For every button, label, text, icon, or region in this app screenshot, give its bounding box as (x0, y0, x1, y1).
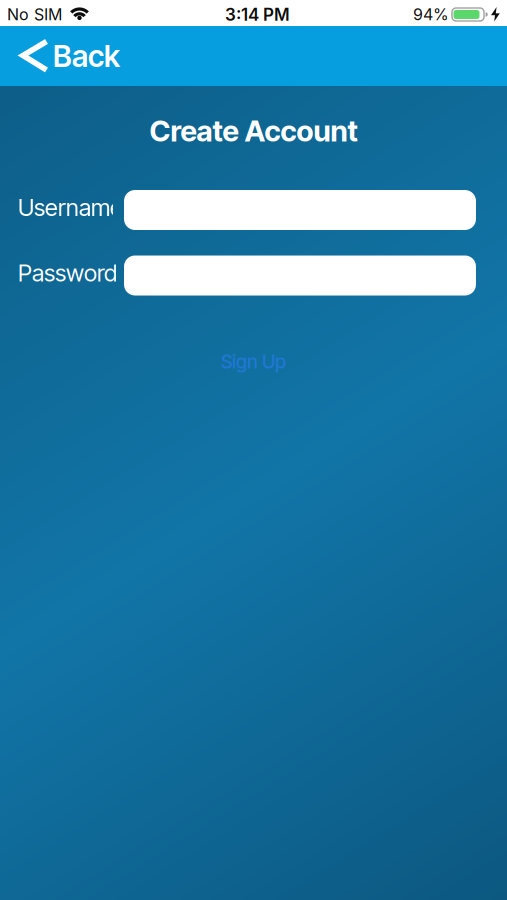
textField[interactable]: Username (124, 195, 476, 225)
staticText: Sign Up (221, 350, 286, 373)
button[interactable]: Back (0, 38, 120, 74)
staticText: 3:14 PM (225, 4, 290, 25)
button[interactable]: Sign Up (221, 350, 286, 373)
staticText: Create Account (149, 113, 357, 149)
staticText: Back (53, 38, 120, 74)
staticText: 94% (413, 5, 449, 24)
staticText: Username (18, 193, 123, 222)
textField[interactable]: Password (124, 260, 476, 290)
staticText: Password (18, 259, 117, 287)
staticText: No SIM (7, 5, 62, 24)
